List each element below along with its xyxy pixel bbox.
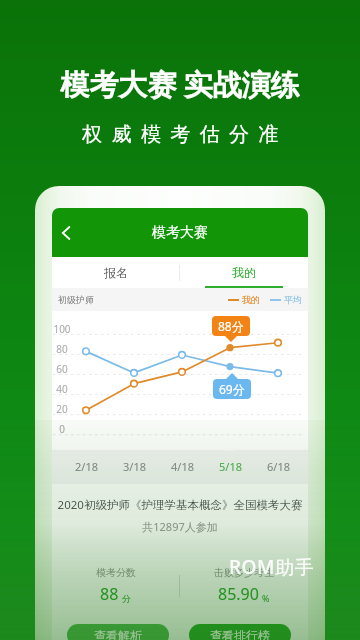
- staticText: 我的: [232, 265, 256, 280]
- button[interactable]: 查看排行榜: [189, 624, 291, 640]
- staticText: 查看解析: [94, 628, 142, 640]
- staticText: 我的: [242, 294, 260, 305]
- staticText: 3/18: [123, 459, 146, 474]
- staticText: 共12897人参加: [52, 519, 308, 534]
- staticText: 模考分数: [96, 566, 136, 579]
- staticText: 4/18: [171, 459, 194, 474]
- staticText: 查看排行榜: [210, 628, 270, 640]
- button[interactable]: 报名: [52, 257, 179, 288]
- staticText: 模考大赛 实战演练: [0, 64, 360, 104]
- staticText: 权威模考估分准: [5, 122, 360, 147]
- staticText: 报名: [104, 265, 128, 280]
- staticText: 0: [52, 422, 74, 436]
- staticText: 60: [52, 362, 74, 376]
- staticText: 5/18: [219, 459, 242, 474]
- staticText: 88: [100, 583, 119, 605]
- staticText: 分: [122, 593, 131, 604]
- staticText: 平均: [284, 294, 302, 305]
- staticText: 20: [52, 402, 74, 416]
- staticText: 2/18: [75, 459, 98, 474]
- staticText: 击败多少考生: [214, 566, 274, 579]
- staticText: 100: [52, 322, 74, 336]
- staticText: 模考大赛: [152, 224, 208, 242]
- staticText: 6/18: [267, 459, 290, 474]
- button[interactable]: 查看解析: [67, 624, 169, 640]
- staticText: 85.90: [218, 583, 259, 605]
- staticText: 初级护师: [58, 294, 94, 305]
- staticText: 80: [52, 342, 74, 356]
- button[interactable]: 我的: [180, 257, 308, 288]
- button[interactable]: Back: [52, 218, 82, 248]
- staticText: 88分: [218, 318, 244, 334]
- staticText: 40: [52, 382, 74, 396]
- staticText: %: [262, 592, 270, 604]
- staticText: 69分: [219, 381, 245, 397]
- staticText: ROM助手: [229, 554, 315, 580]
- staticText: 2020初级护师《护理学基本概念》全国模考大赛: [52, 497, 308, 513]
